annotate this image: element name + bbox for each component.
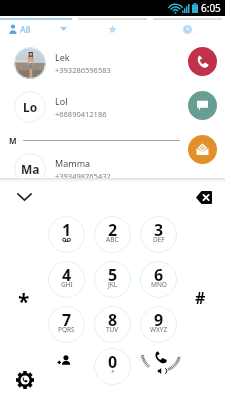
staticText: JKL: [108, 280, 118, 289]
staticText: M: [9, 135, 17, 146]
staticText: +393498765432: [55, 171, 111, 181]
button[interactable]: All: [0, 20, 75, 38]
staticText: Ma: [21, 161, 40, 177]
staticText: #: [195, 287, 206, 309]
staticText: 6: [154, 264, 164, 286]
staticText: Mamma: [55, 157, 91, 169]
button[interactable]: Email: [188, 135, 217, 164]
staticText: +: [111, 367, 115, 376]
button[interactable]: Add contact: [48, 345, 80, 377]
staticText: 6:05: [201, 1, 221, 15]
button[interactable]: Call: [138, 344, 184, 384]
button[interactable]: *: [8, 285, 40, 317]
staticText: All: [20, 23, 31, 35]
staticText: Lek: [55, 51, 70, 63]
staticText: 4: [62, 264, 72, 286]
staticText: DEF: [153, 235, 165, 244]
button[interactable]: Call: [188, 47, 217, 76]
button[interactable]: Recents: [150, 20, 225, 38]
staticText: 9: [154, 309, 164, 331]
button[interactable]: Message: [188, 91, 217, 120]
button[interactable]: #: [184, 282, 216, 314]
button[interactable]: Settings: [9, 364, 41, 396]
staticText: MNO: [151, 280, 167, 289]
staticText: 5: [108, 264, 118, 286]
button[interactable]: 0: [94, 348, 131, 385]
staticText: 1: [62, 219, 72, 241]
staticText: Lo: [23, 99, 38, 115]
button[interactable]: 8: [94, 306, 131, 343]
button[interactable]: 9: [140, 306, 177, 343]
button[interactable]: 2: [94, 216, 131, 253]
button[interactable]: 1: [48, 216, 85, 253]
button[interactable]: Collapse dialpad: [6, 179, 42, 215]
button[interactable]: 6: [140, 261, 177, 298]
staticText: GHI: [61, 280, 73, 289]
button[interactable]: Lo: [0, 85, 225, 129]
staticText: WXYZ: [150, 325, 168, 334]
staticText: *: [18, 287, 30, 316]
button[interactable]: 5: [94, 261, 131, 298]
staticText: 0: [108, 351, 118, 373]
button[interactable]: Ma: [0, 147, 225, 191]
button[interactable]: Favorites: [75, 20, 150, 38]
button[interactable]: 3: [140, 216, 177, 253]
button[interactable]: 4: [48, 261, 85, 298]
staticText: 7: [62, 309, 72, 331]
button[interactable]: 7: [48, 306, 85, 343]
staticText: Lol: [55, 95, 68, 107]
staticText: 3: [154, 219, 164, 241]
staticText: TUV: [106, 325, 119, 334]
staticText: ABC: [106, 235, 119, 244]
staticText: +66890412186: [55, 109, 107, 119]
staticText: PQRS: [58, 325, 75, 334]
staticText: +393286596583: [55, 65, 111, 75]
staticText: 8: [108, 309, 118, 331]
button[interactable]: Lek: [0, 41, 225, 85]
button[interactable]: Backspace: [187, 180, 221, 214]
staticText: 2: [108, 219, 118, 241]
